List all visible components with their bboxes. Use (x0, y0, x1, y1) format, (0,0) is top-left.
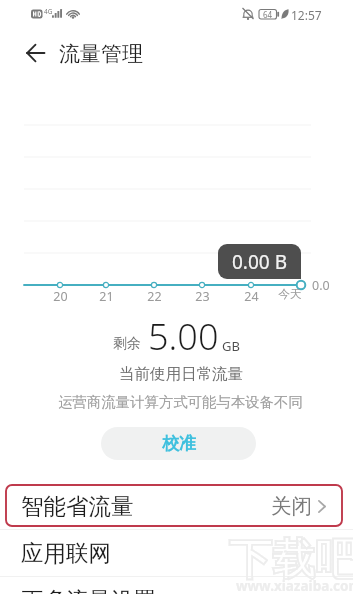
button[interactable]: 智能省流量 (0, 483, 353, 529)
staticText: 流量管理 (59, 41, 143, 67)
staticText: 5.00 (148, 312, 219, 361)
staticText: 运营商流量计算方式可能与本设备不同 (58, 393, 303, 411)
button[interactable]: 应用联网 (0, 530, 353, 576)
staticText: 21 (99, 288, 114, 305)
staticText: 校准 (162, 433, 196, 454)
staticText: 更多流量设置 (21, 586, 156, 594)
staticText: 22 (147, 288, 162, 305)
staticText: 今天 (278, 287, 302, 302)
staticText: 应用联网 (21, 539, 111, 567)
staticText: GB (222, 337, 240, 355)
staticText: 当前使用日常流量 (119, 364, 243, 384)
staticText: 12:57 (291, 7, 322, 23)
button[interactable]: 校准 (101, 427, 256, 460)
staticText: 智能省流量 (21, 492, 134, 520)
button[interactable]: Back (18, 35, 54, 71)
staticText: 4G (44, 7, 53, 16)
staticText: 关闭 (271, 493, 312, 519)
staticText: 24 (244, 288, 259, 305)
staticText: 23 (195, 288, 210, 305)
button[interactable]: 更多流量设置 (0, 577, 353, 594)
staticText: 剩余 (113, 335, 141, 353)
staticText: www.xiazaiba.com (236, 577, 353, 594)
staticText: 下载吧 (229, 533, 353, 587)
staticText: 0.00 B (232, 249, 287, 275)
staticText: 0.0 (312, 277, 330, 294)
staticText: 64 (263, 9, 273, 20)
staticText: 20 (53, 288, 68, 305)
